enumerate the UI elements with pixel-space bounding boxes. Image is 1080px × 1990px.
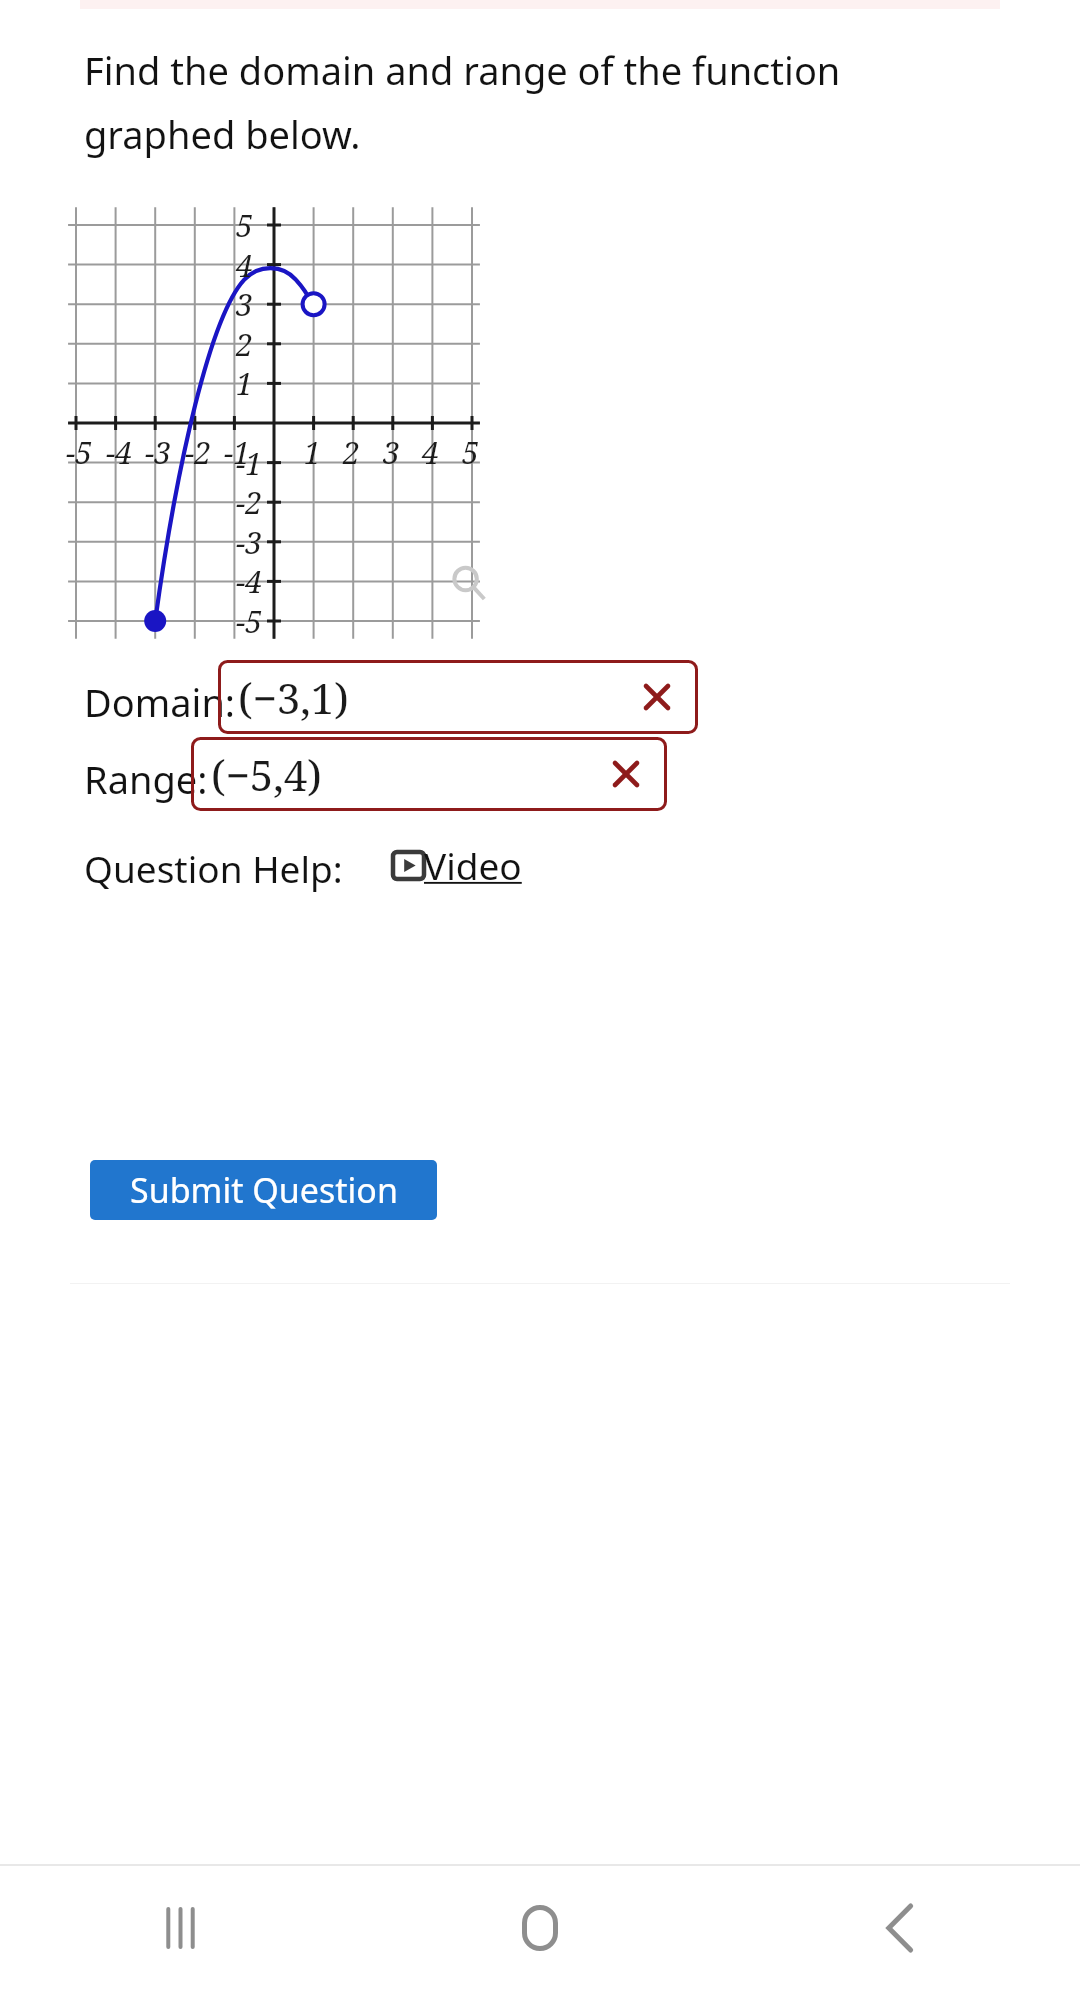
staticText: 5	[462, 432, 479, 473]
staticText: -3	[236, 522, 263, 563]
staticText: -5	[236, 601, 263, 642]
staticText: -1	[236, 443, 263, 484]
button[interactable]: Video	[393, 840, 522, 890]
staticText: 1	[304, 432, 321, 473]
staticText: 2	[236, 324, 253, 365]
staticText: Domain:	[84, 676, 236, 728]
button[interactable]: Recent apps	[0, 1866, 360, 1990]
staticText: -5	[66, 432, 93, 473]
staticText: (−5,4)	[211, 746, 322, 803]
staticText: Video	[424, 840, 522, 890]
staticText: -4	[106, 432, 133, 473]
staticText: -3	[145, 432, 172, 473]
button[interactable]: (−3,1)	[218, 660, 698, 734]
staticText: -1	[224, 432, 251, 473]
staticText: Question Help:	[84, 843, 343, 893]
staticText: 2	[343, 432, 360, 473]
staticText: -2	[185, 432, 212, 473]
staticText: 4	[422, 432, 439, 473]
button[interactable]: Home	[360, 1866, 720, 1990]
button[interactable]: Back	[720, 1866, 1080, 1990]
staticText: 3	[383, 432, 400, 473]
staticText: graphed below.	[84, 108, 361, 160]
staticText: (−3,1)	[238, 669, 349, 726]
button[interactable]: Submit Question	[90, 1160, 437, 1220]
staticText: Range:	[84, 753, 208, 805]
staticText: 1	[236, 363, 253, 404]
staticText: 3	[236, 284, 253, 325]
staticText: -2	[236, 482, 263, 523]
staticText: 4	[236, 245, 253, 286]
staticText: -4	[236, 561, 263, 602]
button[interactable]: (−5,4)	[191, 737, 667, 811]
staticText: Submit Question	[130, 1167, 398, 1213]
staticText: Find the domain and range of the functio…	[84, 44, 841, 96]
staticText: 5	[236, 205, 253, 246]
